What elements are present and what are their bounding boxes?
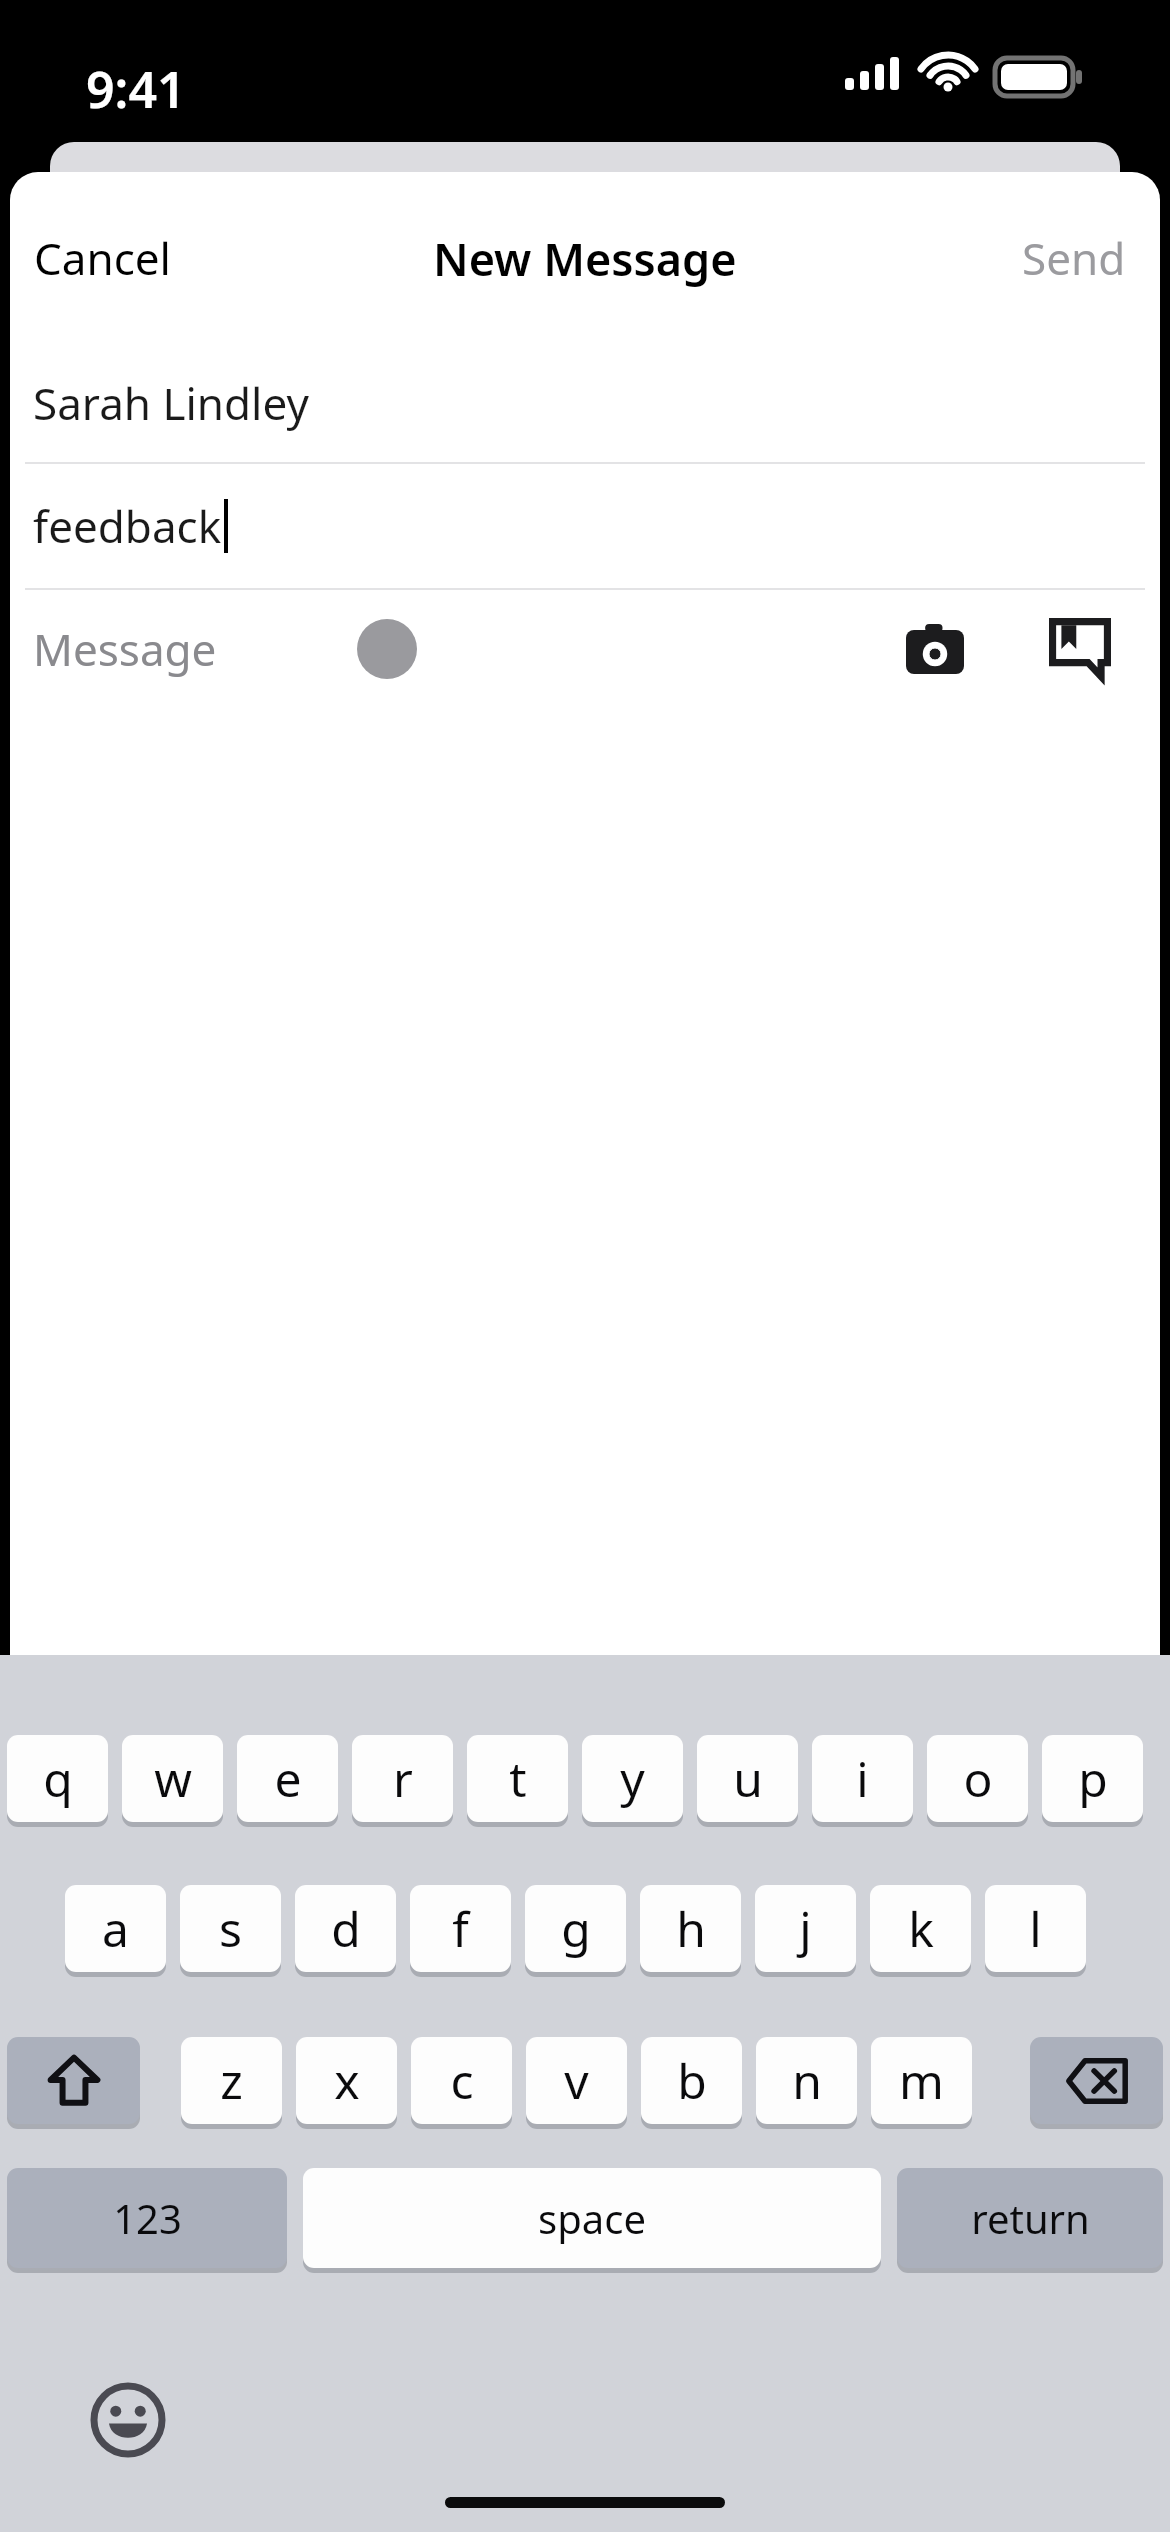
staticText: 123 [113, 2191, 182, 2245]
button[interactable]: j [755, 1885, 856, 1977]
button[interactable]: space [303, 2168, 881, 2273]
button[interactable]: g [525, 1885, 626, 1977]
button[interactable]: h [640, 1885, 741, 1977]
button[interactable]: c [411, 2037, 512, 2129]
staticText: Sarah Lindley [33, 373, 309, 433]
staticText: h [676, 1896, 706, 1961]
button[interactable]: l [985, 1885, 1086, 1977]
button[interactable]: m [871, 2037, 972, 2129]
staticText: p [1078, 1746, 1108, 1811]
button[interactable]: y [582, 1735, 683, 1827]
button[interactable]: Cancel [14, 210, 214, 306]
staticText: z [220, 2048, 243, 2113]
staticText: f [452, 1896, 469, 1961]
staticText: j [799, 1896, 812, 1961]
staticText: t [509, 1746, 527, 1811]
staticText: s [219, 1896, 242, 1961]
button[interactable]: Take photo [890, 604, 980, 694]
staticText: l [1029, 1896, 1042, 1961]
staticText: a [102, 1896, 129, 1961]
button[interactable]: f [410, 1885, 511, 1977]
button[interactable]: Send [956, 210, 1146, 306]
staticText: m [899, 2048, 944, 2113]
staticText: y [620, 1746, 645, 1811]
button[interactable]: o [927, 1735, 1028, 1827]
button[interactable]: p [1042, 1735, 1143, 1827]
button[interactable]: d [295, 1885, 396, 1977]
button[interactable]: t [467, 1735, 568, 1827]
staticText: b [677, 2048, 707, 2113]
button[interactable]: Emoji [78, 2370, 178, 2470]
button[interactable]: q [7, 1735, 108, 1827]
staticText: e [274, 1746, 302, 1811]
button[interactable]: u [697, 1735, 798, 1827]
staticText: Send [1022, 228, 1126, 288]
button[interactable]: r [352, 1735, 453, 1827]
staticText: Message [33, 619, 217, 679]
button[interactable]: v [526, 2037, 627, 2129]
button[interactable]: Sarah Lindley [10, 344, 1160, 462]
staticText: r [393, 1746, 413, 1811]
staticText: Cancel [34, 228, 171, 288]
staticText: feedback [33, 496, 222, 556]
button[interactable]: Stickers [1035, 604, 1125, 694]
button[interactable]: Backspace [1030, 2037, 1163, 2129]
button[interactable]: w [122, 1735, 223, 1827]
staticText: x [334, 2048, 360, 2113]
staticText: New Message [433, 228, 737, 289]
staticText: 9:41 [86, 55, 186, 123]
button[interactable]: z [181, 2037, 282, 2129]
staticText: n [792, 2048, 822, 2113]
staticText: i [856, 1746, 869, 1811]
button[interactable]: feedback [10, 463, 1160, 588]
staticText: k [908, 1896, 934, 1961]
staticText: q [43, 1746, 73, 1811]
staticText: d [331, 1896, 361, 1961]
button[interactable]: i [812, 1735, 913, 1827]
staticText: space [538, 2191, 646, 2245]
staticText: c [450, 2048, 474, 2113]
button[interactable]: x [296, 2037, 397, 2129]
button[interactable]: e [237, 1735, 338, 1827]
button[interactable]: a [65, 1885, 166, 1977]
staticText: o [963, 1746, 993, 1811]
staticText: u [733, 1746, 763, 1811]
button[interactable]: s [180, 1885, 281, 1977]
staticText: g [561, 1896, 591, 1961]
button[interactable]: k [870, 1885, 971, 1977]
button[interactable]: n [756, 2037, 857, 2129]
staticText: v [564, 2048, 589, 2113]
staticText: return [971, 2191, 1090, 2245]
staticText: w [154, 1746, 192, 1811]
button[interactable]: 123 [7, 2168, 287, 2273]
button[interactable]: b [641, 2037, 742, 2129]
button[interactable]: Shift [7, 2037, 140, 2129]
button[interactable]: return [897, 2168, 1163, 2273]
